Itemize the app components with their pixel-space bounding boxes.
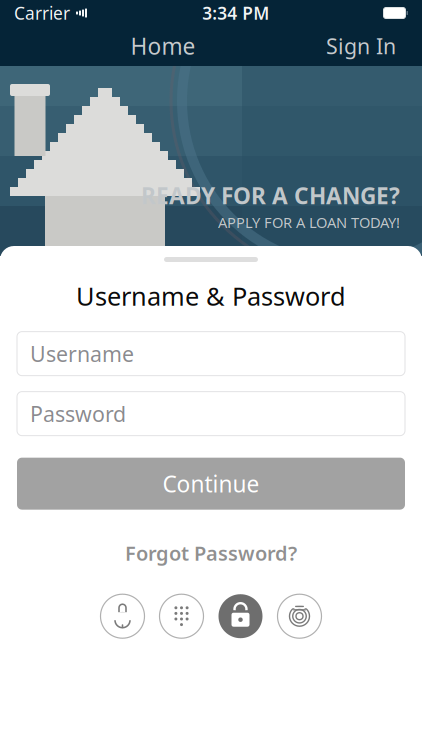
button[interactable]: Password xyxy=(17,392,405,436)
staticText: READY FOR A CHANGE? xyxy=(141,180,400,210)
button[interactable]: Voice sign in xyxy=(100,594,144,638)
staticText: Carrier xyxy=(14,1,70,24)
button[interactable]: Home xyxy=(120,25,205,67)
staticText: Forgot Password? xyxy=(125,540,297,566)
staticText: Home xyxy=(130,31,195,61)
button[interactable]: Username xyxy=(17,332,405,376)
button[interactable]: Fingerprint sign in xyxy=(277,594,321,638)
staticText: Sign In xyxy=(326,32,396,60)
button[interactable]: Username and password xyxy=(218,594,262,638)
staticText: 3:34 PM xyxy=(202,1,269,24)
button[interactable]: Passcode keypad xyxy=(159,594,203,638)
button[interactable]: Sign In xyxy=(316,26,406,66)
staticText: Username & Password xyxy=(76,279,346,313)
staticText: Continue xyxy=(162,469,259,499)
staticText: APPLY FOR A LOAN TODAY! xyxy=(218,212,400,232)
button[interactable]: Continue xyxy=(17,458,405,510)
staticText: Password xyxy=(30,399,126,428)
staticText: Username xyxy=(30,339,134,368)
button[interactable]: Forgot Password? xyxy=(113,534,309,572)
